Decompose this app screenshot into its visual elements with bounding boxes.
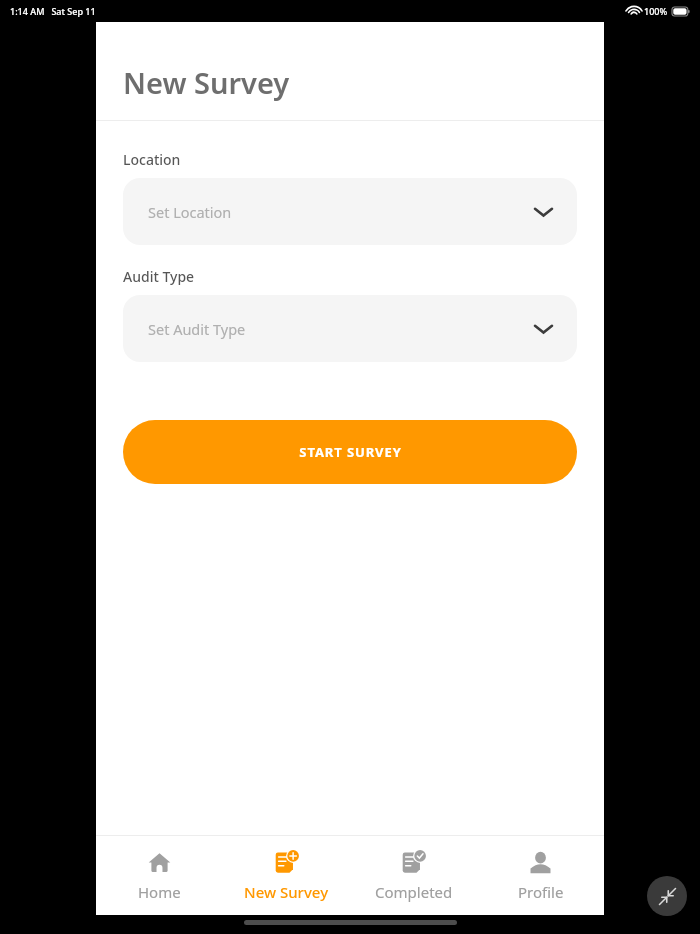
button[interactable]: START SURVEY xyxy=(123,420,577,484)
staticText: Set Location xyxy=(148,202,232,222)
button[interactable]: Set Audit Type xyxy=(123,295,577,362)
staticText: Audit Type xyxy=(123,267,195,286)
staticText: Location xyxy=(123,150,181,169)
button[interactable]: Profile xyxy=(477,836,604,915)
button[interactable]: New Survey xyxy=(223,836,350,915)
staticText: Home xyxy=(138,882,181,902)
button[interactable]: Set Location xyxy=(123,178,577,245)
button[interactable]: Home xyxy=(96,836,223,915)
button[interactable]: Collapse xyxy=(647,876,687,916)
staticText: Completed xyxy=(375,882,453,902)
staticText: New Survey xyxy=(244,882,329,902)
staticText: START SURVEY xyxy=(299,443,402,461)
button[interactable]: Completed xyxy=(350,836,477,915)
staticText: 1:14 AM Sat Sep 11 xyxy=(10,5,96,17)
staticText: 100% xyxy=(644,5,668,17)
staticText: Set Audit Type xyxy=(148,319,246,339)
staticText: New Survey xyxy=(123,63,290,102)
staticText: Profile xyxy=(518,882,564,902)
